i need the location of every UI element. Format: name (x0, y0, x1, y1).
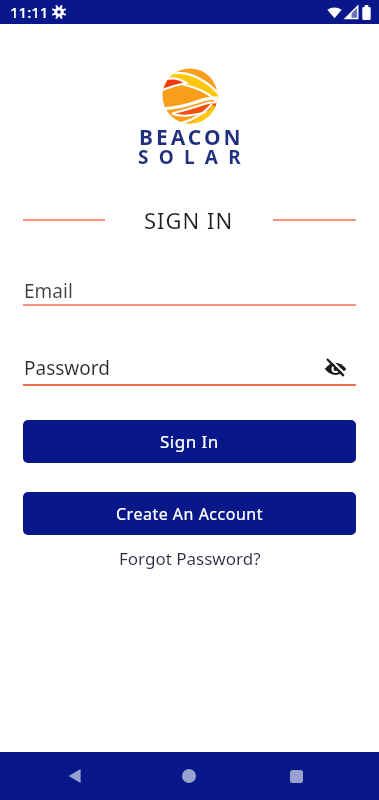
button[interactable]: Forgot Password? (119, 547, 261, 570)
button[interactable] (165, 752, 213, 800)
staticText: BEACON (139, 123, 244, 152)
button[interactable] (324, 357, 347, 380)
staticText: Email (24, 278, 73, 304)
staticText: SOLAR (138, 144, 251, 170)
staticText: Create An Account (116, 503, 263, 525)
staticText: Sign In (160, 430, 219, 453)
button[interactable]: Create An Account (23, 492, 356, 535)
button[interactable] (272, 752, 320, 800)
button[interactable]: Sign In (23, 420, 356, 463)
button[interactable] (51, 752, 99, 800)
staticText: SIGN IN (144, 205, 234, 235)
staticText: 11:11 (10, 2, 49, 22)
staticText: Password (24, 355, 110, 381)
